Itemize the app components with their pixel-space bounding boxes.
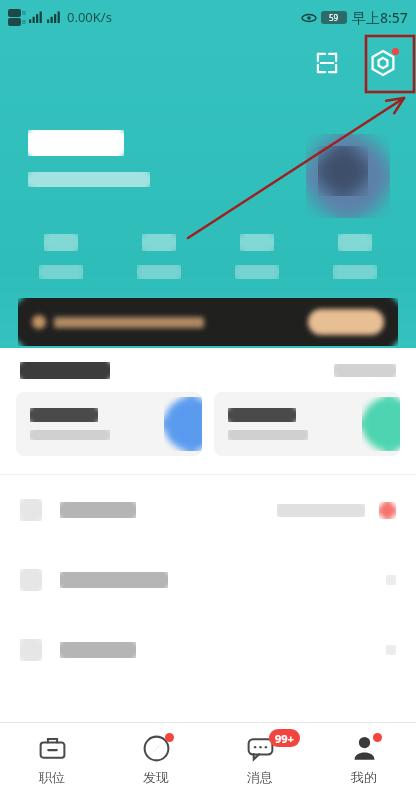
button[interactable] — [116, 234, 202, 279]
button[interactable]: 99+ — [208, 735, 312, 785]
staticText: 我的 — [351, 769, 377, 785]
staticText: 发现 — [143, 769, 169, 785]
staticText: 59 — [329, 12, 339, 23]
staticText: B — [22, 18, 26, 26]
button[interactable] — [18, 234, 104, 279]
button[interactable]: 我的 — [312, 735, 416, 785]
button[interactable] — [0, 545, 416, 615]
button[interactable]: 发现 — [104, 735, 208, 785]
button[interactable]: Settings — [362, 42, 404, 84]
button[interactable] — [0, 475, 416, 545]
button[interactable] — [214, 234, 300, 279]
staticText: 早上8:57 — [352, 8, 408, 27]
staticText: 消息 — [247, 769, 273, 785]
staticText: 99+ — [275, 731, 294, 746]
button[interactable] — [312, 234, 398, 279]
staticText: 职位 — [39, 769, 65, 785]
button[interactable]: Scan QR code — [306, 42, 348, 84]
staticText: B — [22, 9, 26, 17]
staticText: 0.00K/s — [67, 8, 112, 26]
button[interactable] — [214, 392, 400, 456]
button[interactable] — [16, 392, 202, 456]
button[interactable]: 职位 — [0, 735, 104, 785]
button[interactable] — [18, 298, 398, 346]
button[interactable] — [0, 615, 416, 685]
